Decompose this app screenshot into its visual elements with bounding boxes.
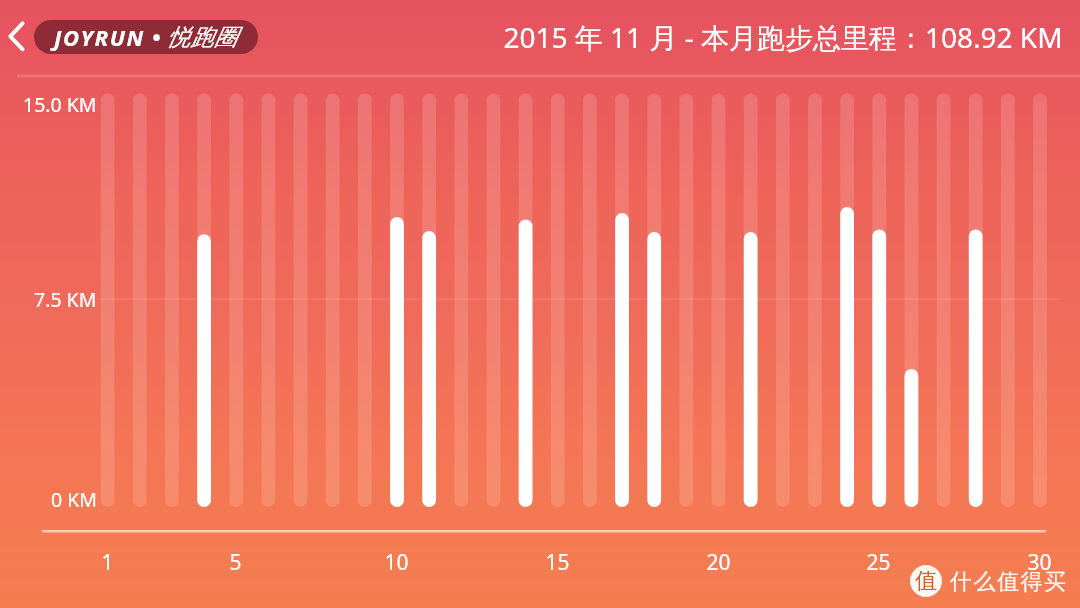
staticText: 1: [101, 548, 114, 577]
button[interactable]: JOYRUN •: [34, 20, 258, 54]
staticText: 值: [915, 567, 937, 595]
staticText: 10: [384, 548, 409, 577]
staticText: 30: [1027, 548, 1052, 577]
staticText: 7.5 KM: [34, 286, 97, 313]
button[interactable]: Back: [0, 8, 36, 64]
staticText: 15.0 KM: [23, 91, 97, 118]
staticText: 25: [866, 548, 891, 577]
staticText: 20: [706, 548, 731, 577]
staticText: 2015 年 11 月 - 本月跑步总里程：108.92 KM: [503, 18, 1063, 56]
staticText: 0 KM: [51, 486, 97, 513]
staticText: 15: [545, 548, 570, 577]
staticText: 悦跑圈: [167, 23, 238, 52]
staticText: 5: [229, 548, 242, 577]
staticText: JOYRUN •: [54, 22, 162, 52]
staticText: 什么值得买: [950, 568, 1068, 596]
